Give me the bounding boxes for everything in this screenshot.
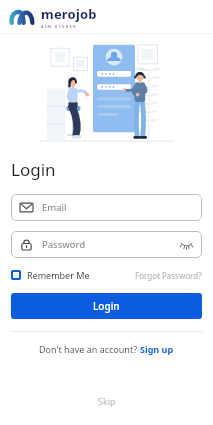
staticText: Forgot Password?	[135, 270, 202, 281]
staticText: Don't have an account?	[39, 343, 140, 355]
staticText: Remember Me	[27, 269, 90, 281]
button[interactable]: Email	[11, 194, 202, 221]
staticText: Email	[42, 201, 67, 214]
other: Email	[20, 201, 33, 214]
staticText: A I M H I G H E R	[41, 24, 76, 29]
button[interactable]: Forgot Password?	[135, 270, 202, 281]
other: merojob logo	[9, 8, 35, 25]
button[interactable]: Sign up	[140, 343, 174, 355]
staticText: Password	[42, 238, 85, 251]
staticText: merojob	[41, 5, 97, 23]
button[interactable]: Login	[11, 293, 202, 319]
other: Show password	[180, 240, 193, 249]
button[interactable]: Remember Me	[11, 269, 90, 281]
button[interactable]: merojob logo	[0, 0, 213, 33]
button[interactable]: Password	[11, 231, 202, 258]
staticText: Login	[93, 299, 120, 313]
button[interactable]: Skip	[84, 389, 130, 413]
other: Password	[20, 238, 33, 251]
staticText: Login	[11, 158, 56, 181]
staticText: Skip	[98, 395, 116, 407]
staticText: Sign up	[140, 343, 174, 355]
